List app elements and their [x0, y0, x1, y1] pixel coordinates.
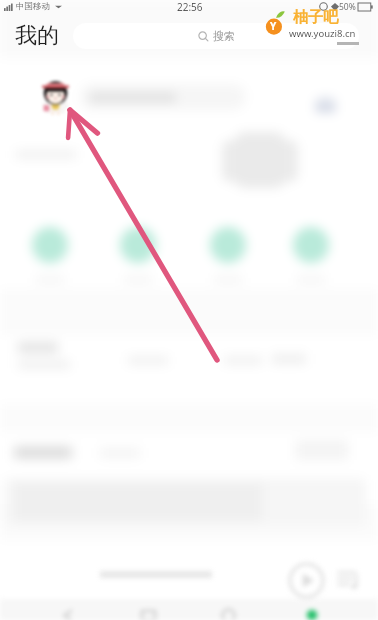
staticText: 柚子吧 — [293, 8, 338, 27]
staticText: 22:56 — [177, 0, 203, 13]
staticText: 50% — [339, 1, 356, 13]
button[interactable] — [32, 227, 68, 263]
button[interactable]: Play — [288, 562, 325, 599]
staticText: 中国移动 — [16, 1, 50, 12]
button[interactable] — [210, 227, 246, 263]
button[interactable]: 搜索 — [73, 23, 359, 49]
staticText: www.youzi8.cn — [289, 27, 356, 40]
button[interactable]: Playlist — [336, 567, 361, 592]
button[interactable] — [293, 227, 329, 263]
staticText: 搜索 — [213, 29, 235, 43]
button[interactable] — [120, 227, 156, 263]
button[interactable]: Home — [219, 606, 238, 620]
staticText: Y — [270, 19, 277, 33]
button[interactable]: Mail — [311, 91, 339, 119]
button[interactable]: Profile avatar — [38, 80, 73, 115]
button[interactable]: Recents — [139, 606, 158, 620]
button[interactable]: Back — [59, 606, 78, 620]
staticText: 我的 — [15, 22, 59, 50]
